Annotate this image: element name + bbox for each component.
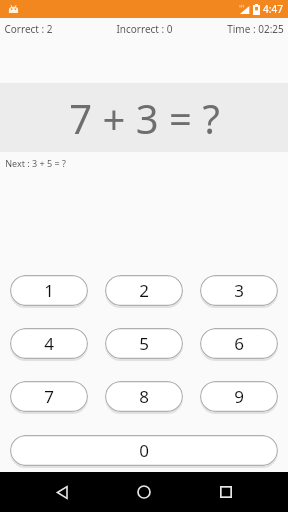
button[interactable]: 2 [105, 275, 183, 306]
staticText: 2 [139, 279, 149, 302]
staticText: 7 [44, 385, 54, 408]
staticText: 8 [139, 385, 149, 408]
button[interactable]: Back [42, 472, 82, 512]
staticText: 6 [234, 332, 244, 355]
button[interactable]: 0 [10, 435, 278, 466]
staticText: 3 [234, 279, 244, 302]
staticText: 7 + 3 = ? [69, 91, 220, 145]
staticText: Correct : 2 [4, 22, 53, 36]
staticText: 4:47 [263, 2, 283, 16]
staticText: Incorrect : 0 [116, 22, 173, 36]
button[interactable]: Home [124, 472, 164, 512]
staticText: Time : 02:25 [227, 22, 284, 36]
staticText: 9 [234, 385, 244, 408]
button[interactable]: 7 [10, 381, 88, 412]
button[interactable]: 4 [10, 328, 88, 359]
button[interactable]: Recents [206, 472, 246, 512]
staticText: 1 [44, 279, 54, 302]
button[interactable]: 5 [105, 328, 183, 359]
button[interactable]: 9 [200, 381, 278, 412]
button[interactable]: 3 [200, 275, 278, 306]
staticText: 4 [44, 332, 54, 355]
button[interactable]: 1 [10, 275, 88, 306]
staticText: Next : 3 + 5 = ? [5, 157, 66, 169]
staticText: 5 [139, 332, 149, 355]
staticText: 0 [139, 439, 149, 462]
button[interactable]: 6 [200, 328, 278, 359]
button[interactable]: 8 [105, 381, 183, 412]
